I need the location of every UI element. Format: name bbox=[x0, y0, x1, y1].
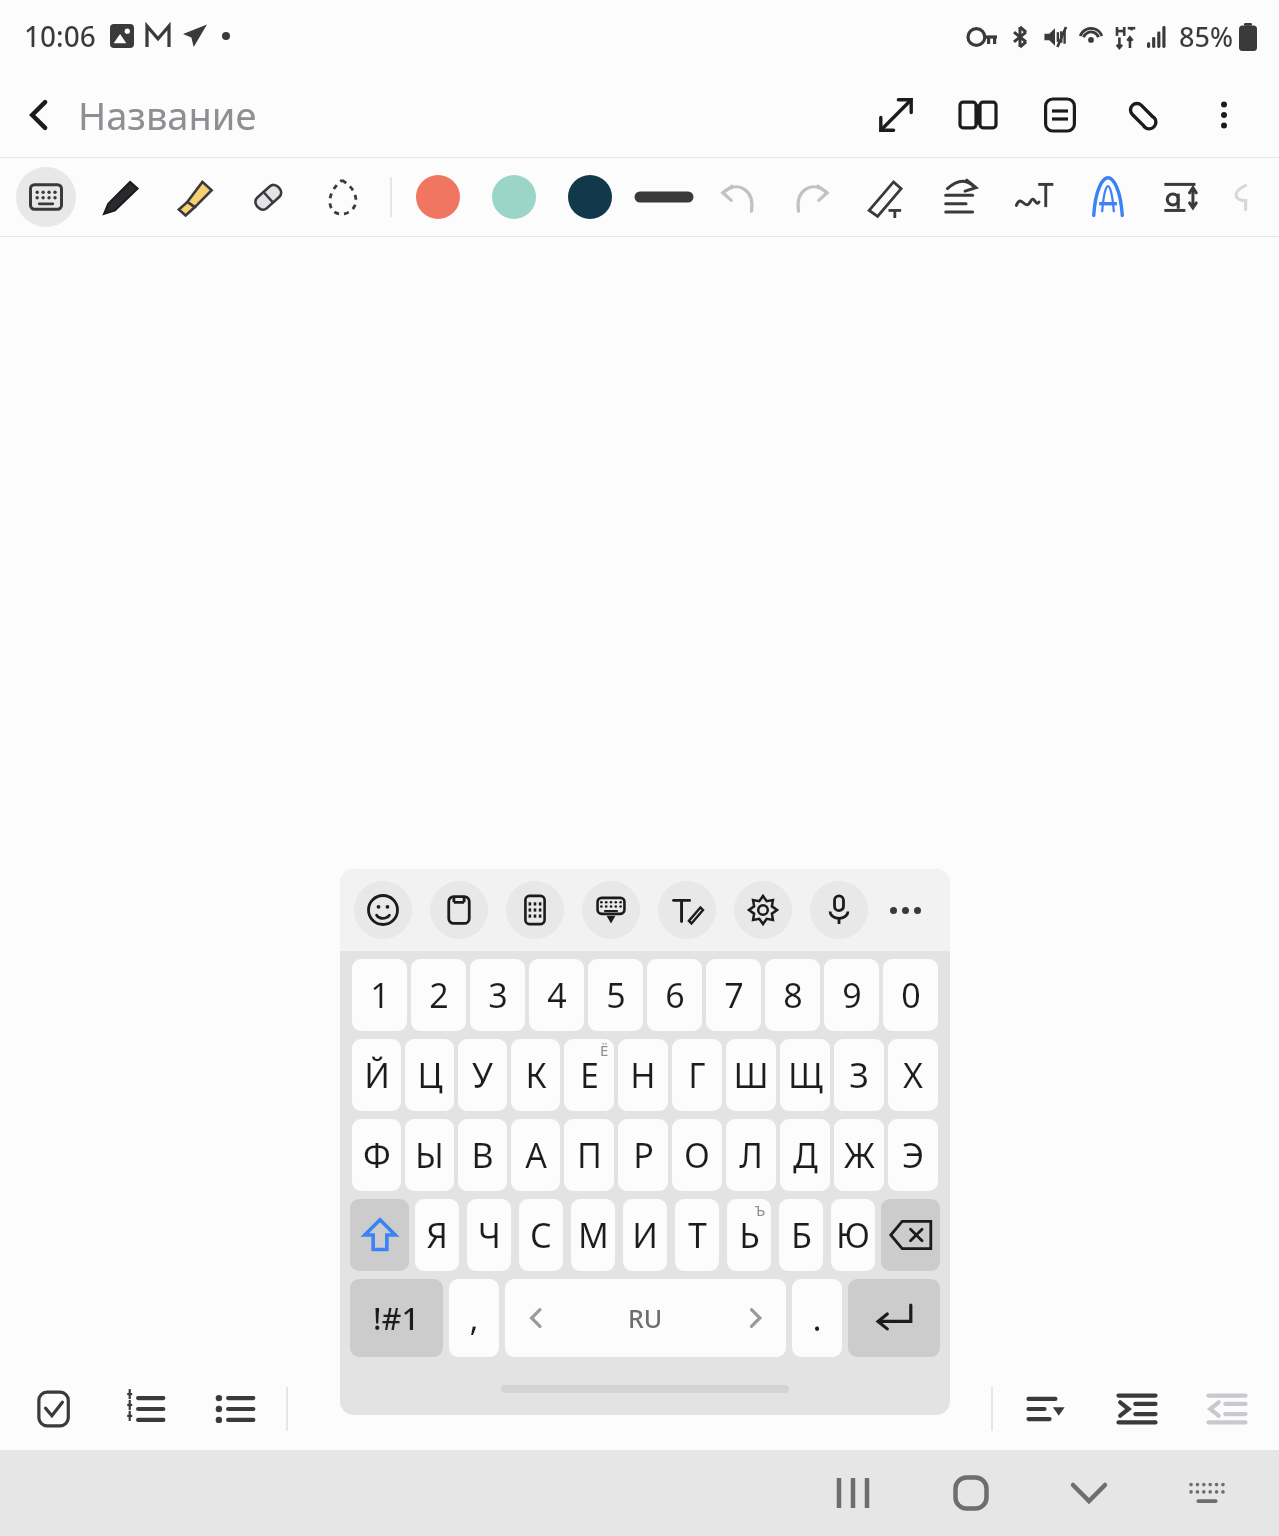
button[interactable]: Convert to text bbox=[856, 167, 916, 227]
button[interactable]: Voice input bbox=[810, 881, 868, 939]
button[interactable]: В bbox=[458, 1119, 507, 1191]
button[interactable]: Enter bbox=[848, 1279, 940, 1357]
button[interactable]: И bbox=[623, 1199, 667, 1271]
staticText: 10:06 bbox=[24, 17, 96, 55]
button[interactable]: Undo bbox=[708, 167, 768, 227]
button[interactable]: Handwriting bbox=[658, 881, 716, 939]
button[interactable]: Keyboard modes bbox=[582, 881, 640, 939]
button[interactable]: 8 bbox=[765, 959, 820, 1031]
button[interactable]: М bbox=[571, 1199, 615, 1271]
button[interactable]: З bbox=[834, 1039, 884, 1111]
button[interactable]: Symbols bbox=[350, 1279, 443, 1357]
button[interactable]: Ш bbox=[726, 1039, 776, 1111]
button[interactable]: П bbox=[564, 1119, 614, 1191]
button[interactable]: Recents bbox=[807, 1450, 899, 1536]
button[interactable]: 5 bbox=[588, 959, 643, 1031]
button[interactable]: Ь bbox=[727, 1199, 771, 1271]
button[interactable]: , bbox=[449, 1279, 499, 1357]
button[interactable]: А bbox=[511, 1119, 560, 1191]
button[interactable]: 0 bbox=[883, 959, 938, 1031]
button[interactable]: У bbox=[458, 1039, 507, 1111]
button[interactable]: Х bbox=[888, 1039, 938, 1111]
button[interactable]: Ю bbox=[831, 1199, 875, 1271]
staticText: Н bbox=[630, 1052, 656, 1098]
button[interactable]: Р bbox=[618, 1119, 668, 1191]
button[interactable]: Ж bbox=[834, 1119, 884, 1191]
staticText: Я bbox=[426, 1212, 448, 1258]
button[interactable]: Й bbox=[352, 1039, 401, 1111]
button[interactable]: Clipboard bbox=[430, 881, 488, 939]
button[interactable]: Г bbox=[672, 1039, 722, 1111]
button[interactable]: More bbox=[882, 887, 928, 933]
button[interactable]: 2 bbox=[411, 959, 466, 1031]
button[interactable]: Attach bbox=[1101, 74, 1183, 156]
button[interactable]: Increase indent bbox=[1109, 1381, 1165, 1437]
button[interactable]: Redo bbox=[782, 167, 842, 227]
button[interactable]: . bbox=[792, 1279, 842, 1357]
button[interactable]: Emoji bbox=[354, 881, 412, 939]
button[interactable]: Reading view bbox=[937, 74, 1019, 156]
button[interactable]: С bbox=[519, 1199, 563, 1271]
button[interactable]: Backspace bbox=[881, 1199, 940, 1271]
staticText: 85% bbox=[1179, 18, 1233, 55]
button[interactable]: 9 bbox=[824, 959, 879, 1031]
button[interactable]: Shift bbox=[350, 1199, 409, 1271]
button[interactable]: Т bbox=[675, 1199, 719, 1271]
button[interactable]: Note layout bbox=[1019, 74, 1101, 156]
button[interactable]: Keyboard bbox=[16, 167, 76, 227]
button[interactable]: Highlighter bbox=[164, 167, 224, 227]
button[interactable]: Coral colour bbox=[410, 169, 466, 225]
button[interactable]: Navy colour bbox=[562, 169, 618, 225]
button[interactable]: 6 bbox=[647, 959, 702, 1031]
button[interactable]: Text size bbox=[1152, 167, 1212, 227]
button[interactable]: More options bbox=[1183, 74, 1265, 156]
button[interactable]: Straighten bbox=[930, 167, 990, 227]
button[interactable]: Number pad bbox=[506, 881, 564, 939]
button[interactable]: Home bbox=[925, 1450, 1017, 1536]
button[interactable]: Handwriting to text bbox=[1004, 167, 1064, 227]
staticText: С bbox=[530, 1212, 552, 1258]
button[interactable]: Bulleted list bbox=[206, 1381, 262, 1437]
button[interactable]: Щ bbox=[780, 1039, 830, 1111]
button[interactable]: Н bbox=[618, 1039, 668, 1111]
button[interactable]: Д bbox=[780, 1119, 830, 1191]
button[interactable]: Pen bbox=[90, 167, 150, 227]
button[interactable]: Eraser bbox=[238, 167, 298, 227]
button[interactable]: Expand bbox=[855, 74, 937, 156]
staticText: Ь bbox=[739, 1212, 760, 1258]
button[interactable]: Switch keyboard bbox=[1161, 1450, 1253, 1536]
button[interactable]: Hide keyboard bbox=[1043, 1450, 1135, 1536]
button[interactable]: Б bbox=[779, 1199, 823, 1271]
button[interactable]: Е bbox=[564, 1039, 614, 1111]
button[interactable]: 7 bbox=[706, 959, 761, 1031]
button[interactable]: Mint colour bbox=[486, 169, 542, 225]
button[interactable]: Auto format bbox=[1078, 167, 1138, 227]
staticText: , bbox=[469, 1295, 479, 1341]
button[interactable]: Checklist bbox=[26, 1381, 82, 1437]
button[interactable]: Э bbox=[888, 1119, 938, 1191]
button[interactable]: 3 bbox=[470, 959, 525, 1031]
button[interactable]: Ф bbox=[352, 1119, 401, 1191]
button[interactable]: Alignment bbox=[1019, 1381, 1075, 1437]
staticText: И bbox=[632, 1212, 658, 1258]
staticText: А bbox=[525, 1132, 547, 1178]
button[interactable]: Back bbox=[0, 76, 78, 154]
button[interactable]: 4 bbox=[529, 959, 584, 1031]
button[interactable]: Л bbox=[726, 1119, 776, 1191]
button[interactable]: Ч bbox=[467, 1199, 511, 1271]
button[interactable]: К bbox=[511, 1039, 560, 1111]
button[interactable]: Numbered list bbox=[116, 1381, 172, 1437]
staticText: Д bbox=[793, 1132, 818, 1178]
button[interactable]: Settings bbox=[734, 881, 792, 939]
button[interactable]: Ц bbox=[405, 1039, 454, 1111]
button[interactable]: О bbox=[672, 1119, 722, 1191]
staticText: М bbox=[578, 1212, 609, 1258]
button[interactable]: Stroke width bbox=[634, 169, 694, 225]
button[interactable]: Decrease indent bbox=[1199, 1381, 1255, 1437]
button[interactable]: Selection bbox=[312, 167, 372, 227]
button[interactable]: Ы bbox=[405, 1119, 454, 1191]
button[interactable]: 1 bbox=[352, 959, 407, 1031]
button[interactable]: Я bbox=[415, 1199, 459, 1271]
staticText: Ё bbox=[600, 1040, 609, 1060]
button[interactable]: Space, RU bbox=[505, 1279, 786, 1357]
